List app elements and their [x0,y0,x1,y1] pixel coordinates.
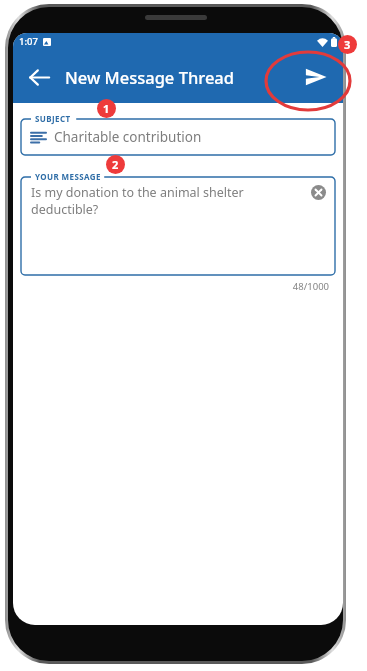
button[interactable]: Back [19,57,59,97]
staticText: 1:07 [19,35,38,48]
staticText: 1 [103,101,110,116]
staticText: 2 [112,157,119,172]
button[interactable]: Clear message [307,181,329,203]
button[interactable]: Send [295,56,337,98]
staticText: Is my donation to the animal shelter ded… [31,184,244,218]
staticText: YOUR MESSAGE [35,171,101,182]
staticText: 3 [344,37,351,52]
staticText: New Message Thread [65,66,235,88]
staticText: SUBJECT [35,113,71,124]
staticText: Charitable contribution [54,128,202,146]
staticText: 48/1000 [21,280,329,293]
